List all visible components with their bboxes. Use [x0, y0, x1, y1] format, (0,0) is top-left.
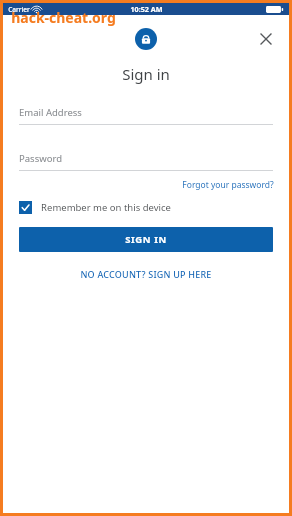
button[interactable]: Email Address — [19, 106, 273, 125]
staticText: hack-cheat.org — [11, 8, 116, 27]
staticText: Remember me on this device — [41, 201, 171, 214]
button[interactable]: Forgot your password? — [182, 179, 274, 191]
button[interactable]: Password — [19, 152, 273, 171]
button[interactable]: Secure sign in — [135, 28, 157, 50]
button[interactable]: Close — [256, 29, 276, 49]
staticText: NO ACCOUNT? SIGN UP HERE — [80, 268, 212, 280]
staticText: Forgot your password? — [182, 179, 274, 191]
button[interactable]: NO ACCOUNT? SIGN UP HERE — [74, 266, 218, 282]
button[interactable]: Remember me on this device — [19, 201, 273, 214]
staticText: 10:52 AM — [130, 4, 163, 14]
button[interactable]: SIGN IN — [19, 227, 273, 252]
staticText: Carrier — [8, 5, 30, 14]
staticText: SIGN IN — [125, 233, 167, 246]
staticText: Email Address — [19, 106, 82, 119]
staticText: Sign in — [122, 64, 170, 84]
staticText: Password — [19, 152, 62, 165]
